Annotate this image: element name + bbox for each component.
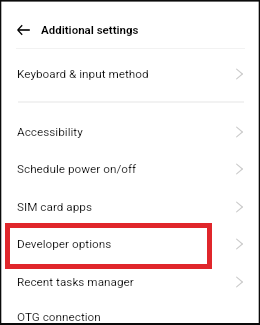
staticText: Accessibility [17, 125, 83, 139]
button[interactable]: SIM card apps [2, 189, 258, 225]
staticText: OTG connection [17, 310, 101, 324]
button[interactable]: OTG connection [2, 299, 258, 325]
button[interactable]: Accessibility [2, 114, 258, 150]
button[interactable]: Schedule power on/off [2, 151, 258, 187]
staticText: Keyboard & input method [17, 67, 149, 81]
button[interactable]: Back [12, 19, 34, 41]
staticText: SIM card apps [17, 200, 92, 214]
button[interactable]: Keyboard & input method [2, 56, 258, 92]
button[interactable]: Developer options [2, 226, 258, 262]
button[interactable]: Recent tasks manager [2, 264, 258, 300]
staticText: Developer options [17, 237, 112, 251]
button[interactable]: Additional settings [41, 21, 139, 38]
staticText: Additional settings [41, 23, 139, 36]
staticText: Schedule power on/off [17, 162, 137, 176]
staticText: Recent tasks manager [17, 275, 134, 289]
